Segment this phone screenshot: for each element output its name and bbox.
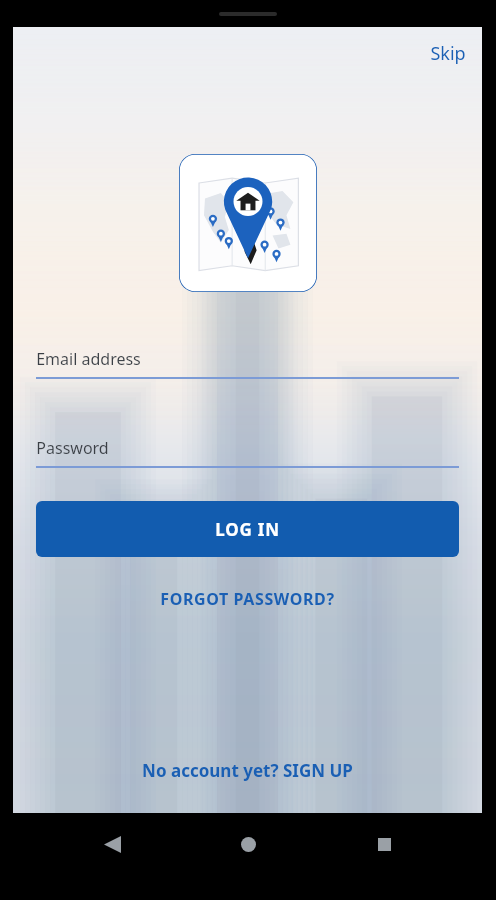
staticText: Password xyxy=(36,437,109,459)
button[interactable]: No account yet? SIGN UP xyxy=(130,753,365,788)
staticText: FORGOT PASSWORD? xyxy=(160,588,335,610)
button[interactable]: Back xyxy=(88,820,136,868)
button[interactable]: App logo xyxy=(179,154,317,292)
button[interactable]: Home xyxy=(224,820,272,868)
button[interactable]: FORGOT PASSWORD? xyxy=(148,582,347,616)
staticText: Email address xyxy=(36,348,141,370)
button[interactable]: LOG IN xyxy=(36,501,459,557)
staticText: Skip xyxy=(430,41,466,66)
button[interactable]: Recents xyxy=(360,820,408,868)
staticText: No account yet? SIGN UP xyxy=(142,759,353,782)
button[interactable]: Password xyxy=(36,437,459,468)
button[interactable]: Email address xyxy=(36,348,459,379)
button[interactable]: Skip xyxy=(422,35,474,72)
staticText: LOG IN xyxy=(215,518,280,541)
